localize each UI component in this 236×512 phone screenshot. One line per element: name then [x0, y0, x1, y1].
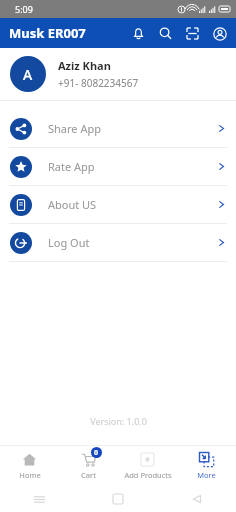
button[interactable]: About US: [0, 186, 236, 223]
staticText: Add Products: [124, 470, 172, 480]
button[interactable]: Back: [157, 486, 236, 512]
staticText: 5:09: [15, 3, 33, 15]
button[interactable]: Recents: [0, 486, 78, 512]
button[interactable]: Share App: [0, 110, 236, 147]
button[interactable]: Rate App: [0, 148, 236, 185]
staticText: A: [23, 65, 33, 84]
staticText: +91- 8082234567: [58, 76, 139, 90]
staticText: Home: [19, 470, 41, 480]
button[interactable]: Add Products: [118, 446, 177, 486]
button[interactable]: 0: [59, 446, 118, 486]
staticText: Version: 1.0.0: [90, 415, 147, 427]
button[interactable]: Search: [156, 24, 175, 43]
button[interactable]: Profile: [210, 24, 229, 43]
button[interactable]: Home: [78, 486, 157, 512]
staticText: Aziz Khan: [58, 58, 111, 73]
button[interactable]: Home: [0, 446, 59, 486]
staticText: Log Out: [48, 235, 90, 250]
staticText: 0: [94, 448, 99, 458]
button[interactable]: Log Out: [0, 224, 236, 261]
staticText: More: [197, 470, 216, 480]
button[interactable]: More: [177, 446, 236, 486]
staticText: Musk ER007: [9, 24, 86, 42]
button[interactable]: A: [0, 48, 236, 100]
staticText: Rate App: [48, 159, 95, 174]
staticText: About US: [48, 197, 97, 212]
button[interactable]: Notifications: [129, 24, 148, 43]
staticText: Share App: [48, 121, 101, 136]
staticText: Cart: [81, 470, 96, 480]
button[interactable]: Scan: [183, 24, 202, 43]
